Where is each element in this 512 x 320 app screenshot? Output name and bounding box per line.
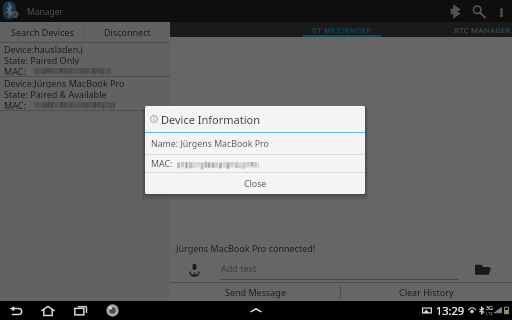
- staticText: State: Paired Only: [4, 54, 80, 65]
- staticText: Name: Jürgens MacBook Pro: [151, 138, 269, 150]
- button[interactable]: Home: [32, 301, 64, 320]
- staticText: Device:hausladen.j: [4, 43, 83, 54]
- staticText: Device Information: [161, 112, 261, 127]
- button[interactable]: Device:Jürgens MacBook Pro: [0, 77, 170, 110]
- button[interactable]: Search Devices: [0, 22, 84, 42]
- button[interactable]: Recent apps: [64, 301, 96, 320]
- button[interactable]: Back: [0, 301, 32, 320]
- button[interactable]: Open folder: [474, 260, 492, 278]
- staticText: Manager: [27, 6, 64, 18]
- staticText: Device:Jürgens MacBook Pro: [4, 77, 125, 88]
- staticText: Search Devices: [11, 26, 74, 38]
- staticText: Jürgens MacBook Pro connected!: [176, 242, 316, 254]
- button[interactable]: Voice input: [186, 261, 202, 277]
- staticText: Close: [244, 178, 267, 190]
- button[interactable]: Screenshot: [96, 301, 128, 320]
- button[interactable]: Close: [145, 173, 365, 194]
- button[interactable]: More options: [491, 0, 511, 22]
- staticText: 13:29: [436, 303, 465, 318]
- staticText: Send Message: [225, 286, 286, 298]
- staticText: RTC MANAGER: [454, 25, 511, 35]
- staticText: MAC:: [4, 99, 26, 110]
- staticText: State: Paired & Available: [4, 88, 107, 99]
- button[interactable]: BT MESSENGER: [272, 22, 412, 37]
- button[interactable]: Expand: [245, 301, 267, 320]
- staticText: 3G: [486, 304, 493, 311]
- staticText: MAC:: [151, 158, 173, 170]
- staticText: Clear History: [399, 286, 454, 298]
- staticText: Disconnect: [104, 26, 151, 38]
- button[interactable]: Device:hausladen.j: [0, 43, 170, 76]
- button[interactable]: Search: [466, 0, 491, 22]
- button[interactable]: Clear History: [341, 283, 512, 301]
- staticText: MAC:: [4, 65, 26, 76]
- button[interactable]: Disconnect: [85, 22, 170, 42]
- staticText: BT MESSENGER: [312, 25, 372, 35]
- staticText: Add text: [221, 262, 257, 274]
- button[interactable]: Send Message: [170, 283, 340, 301]
- button[interactable]: RTC MANAGER: [412, 22, 512, 37]
- button[interactable]: Bluetooth: [442, 0, 466, 22]
- staticText: LTE: [486, 311, 493, 317]
